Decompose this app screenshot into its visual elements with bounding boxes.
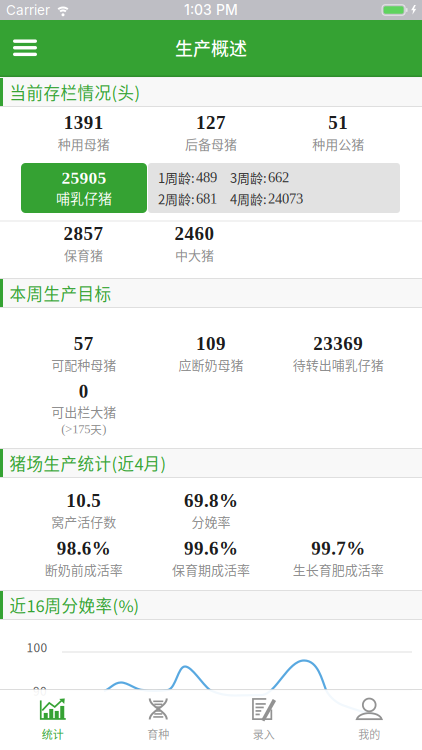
staticText: (>175 (61, 422, 90, 436)
staticText: 0 (79, 381, 89, 402)
staticText: 猪场生产统计(近4月) (9, 451, 166, 475)
staticText: 天 (90, 421, 102, 437)
button[interactable]: 我的 (316, 691, 422, 749)
staticText: Carrier (6, 2, 50, 18)
staticText: 100 (26, 638, 47, 656)
staticText: 保育猪 (64, 245, 103, 264)
staticText: 1周龄: (158, 168, 195, 187)
staticText: 24073 (268, 191, 303, 207)
staticText: 1:03 PM (184, 1, 238, 18)
staticText: 后备母猪 (185, 134, 237, 153)
staticText: 127 (196, 112, 226, 133)
staticText: 可配种母猪 (51, 355, 116, 374)
staticText: 我的 (358, 726, 380, 742)
staticText: 保育期成活率 (172, 560, 250, 579)
staticText: 2857 (63, 223, 103, 244)
staticText: 1391 (64, 112, 104, 133)
staticText: 分娩率 (191, 512, 230, 531)
staticText: 本周生产目标 (9, 281, 111, 305)
staticText: 57 (74, 333, 94, 354)
staticText: 109 (196, 333, 226, 354)
staticText: 育种 (147, 726, 169, 742)
staticText: 98.6% (57, 538, 111, 559)
staticText: 90 (33, 682, 47, 699)
staticText: 录入 (253, 726, 275, 742)
staticText: 489 (196, 169, 217, 185)
staticText: 51 (328, 112, 348, 133)
staticText: 662 (268, 169, 289, 185)
staticText: 断奶前成活率 (45, 560, 123, 579)
staticText: 当前存栏情况(头) (9, 80, 140, 104)
staticText: 69.8% (184, 490, 238, 511)
staticText: 中大猪 (175, 245, 214, 264)
staticText: 可出栏大猪 (51, 402, 116, 421)
staticText: 681 (196, 191, 217, 207)
staticText: 23369 (313, 333, 363, 354)
button[interactable]: Menu (0, 31, 37, 64)
staticText: 种用母猪 (58, 134, 110, 153)
staticText: 2460 (174, 223, 214, 244)
staticText: 3周龄: (230, 168, 267, 187)
staticText: ) (102, 422, 106, 436)
staticText: 近16周分娩率(%) (9, 593, 139, 617)
button[interactable]: 育种 (105, 691, 211, 749)
staticText: 25905 (61, 168, 106, 188)
staticText: 种用公猪 (312, 134, 364, 153)
staticText: 10.5 (66, 490, 101, 511)
staticText: 应断奶母猪 (178, 355, 243, 374)
staticText: 待转出哺乳仔猪 (293, 355, 384, 374)
staticText: 哺乳仔猪 (56, 188, 112, 208)
staticText: 统计 (42, 726, 64, 742)
staticText: 生产概述 (175, 35, 247, 61)
button[interactable]: 统计 (0, 691, 105, 749)
staticText: 生长育肥成活率 (293, 560, 384, 579)
staticText: 窝产活仔数 (51, 512, 116, 531)
staticText: 2周龄: (158, 189, 195, 208)
staticText: 99.7% (311, 538, 365, 559)
staticText: 4周龄: (230, 189, 267, 208)
button[interactable]: 录入 (211, 691, 316, 749)
staticText: 99.6% (184, 538, 238, 559)
